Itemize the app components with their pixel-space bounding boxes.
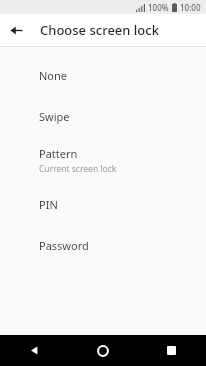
staticText: 100% [148, 2, 169, 13]
button[interactable]: Swipe [0, 96, 206, 137]
staticText: PIN [39, 197, 58, 212]
button[interactable]: None [0, 55, 206, 96]
staticText: Current screen lock [39, 163, 117, 175]
button[interactable]: Back [0, 335, 68, 366]
staticText: None [39, 68, 68, 83]
staticText: Pattern [39, 146, 78, 161]
button[interactable]: Recent apps [137, 335, 206, 366]
staticText: Choose screen lock [40, 21, 159, 39]
staticText: 10:00 [180, 2, 201, 13]
button[interactable]: Back [0, 14, 32, 46]
button[interactable]: Pattern [0, 137, 206, 184]
button[interactable]: PIN [0, 184, 206, 225]
button[interactable]: Password [0, 225, 206, 266]
staticText: Password [39, 238, 89, 253]
button[interactable]: Home [68, 335, 137, 366]
staticText: Swipe [39, 109, 70, 124]
